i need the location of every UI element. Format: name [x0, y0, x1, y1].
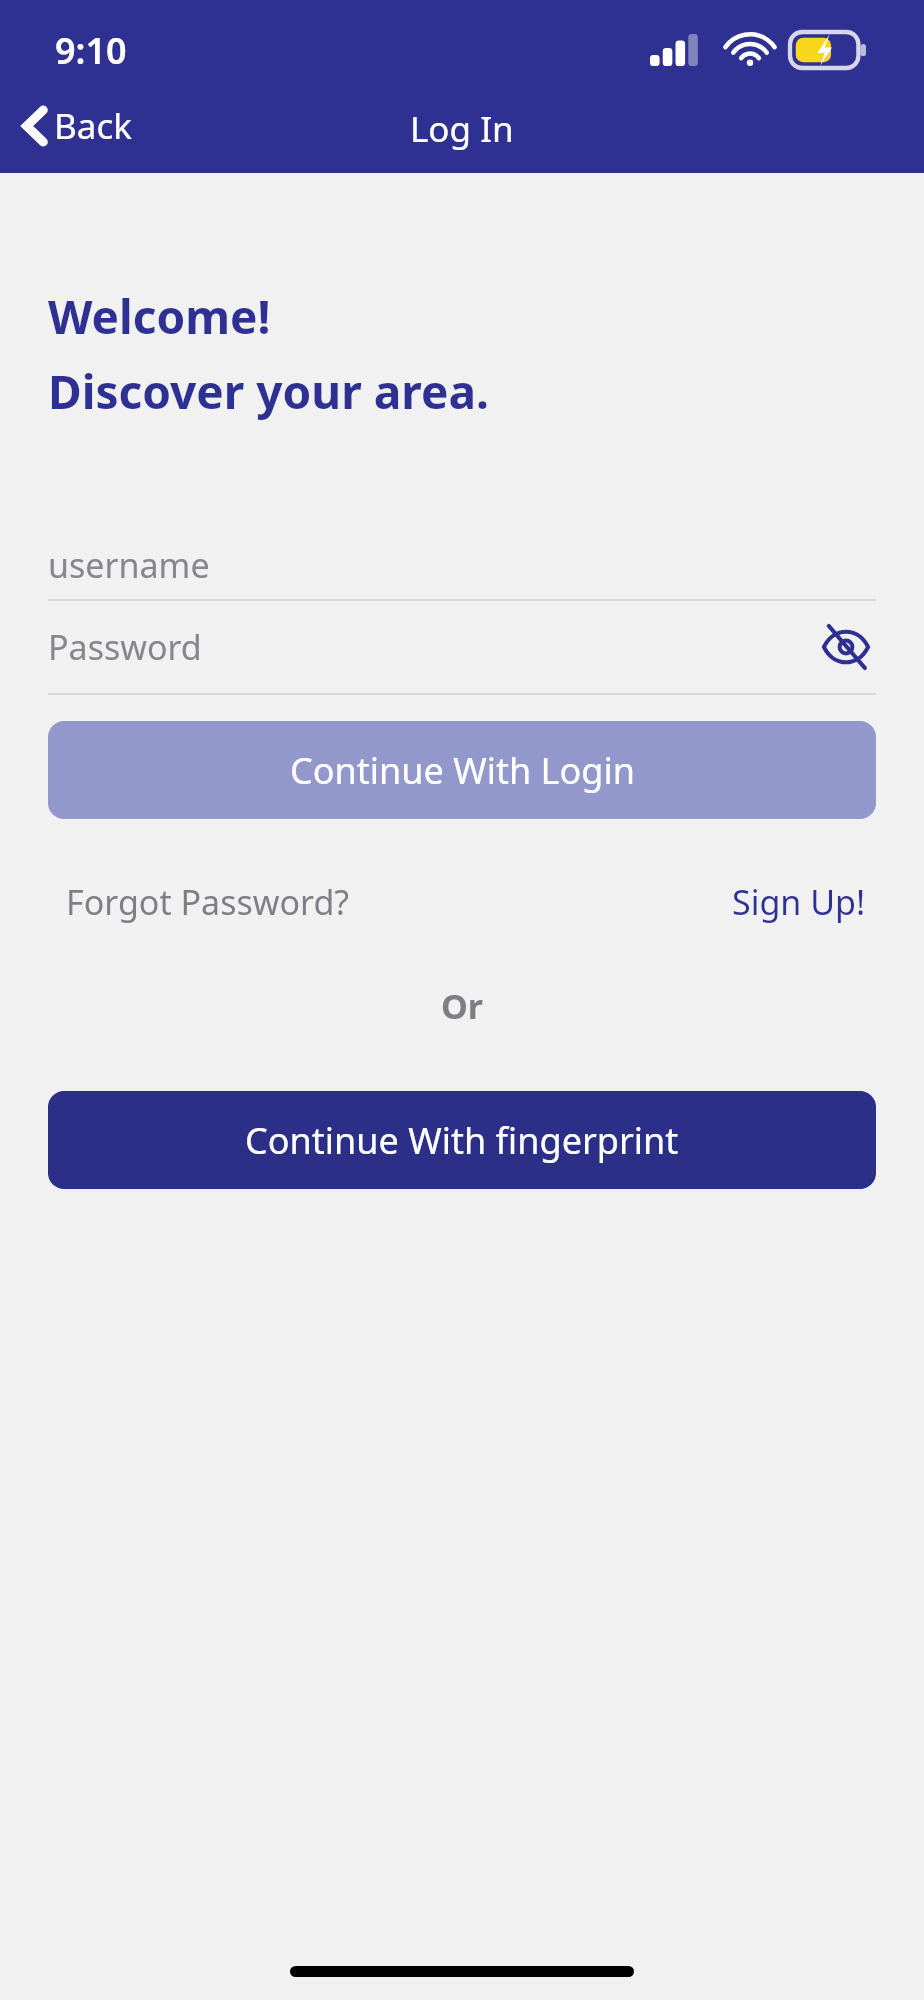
staticText: Or — [48, 983, 876, 1029]
staticText: Password — [48, 624, 202, 670]
button[interactable]: Sign Up! — [722, 871, 876, 933]
button[interactable]: Forgot Password? — [48, 871, 368, 933]
staticText: Back — [54, 102, 132, 150]
button[interactable]: Continue With Login — [48, 721, 876, 819]
button[interactable]: Show password — [816, 621, 876, 673]
button[interactable]: username — [48, 531, 876, 599]
button[interactable]: Back — [14, 98, 140, 154]
button[interactable]: Continue With fingerprint — [48, 1091, 876, 1189]
staticText: Log In — [410, 105, 514, 153]
staticText: Sign Up! — [732, 879, 866, 925]
staticText: Forgot Password? — [66, 879, 350, 925]
button[interactable]: Password — [48, 601, 876, 693]
staticText: Continue With fingerprint — [245, 1116, 679, 1165]
staticText: 9:10 — [55, 26, 127, 75]
staticText: Continue With Login — [290, 746, 635, 795]
staticText: username — [48, 542, 210, 588]
staticText: Welcome! — [48, 285, 271, 348]
staticText: Discover your area. — [48, 360, 489, 423]
